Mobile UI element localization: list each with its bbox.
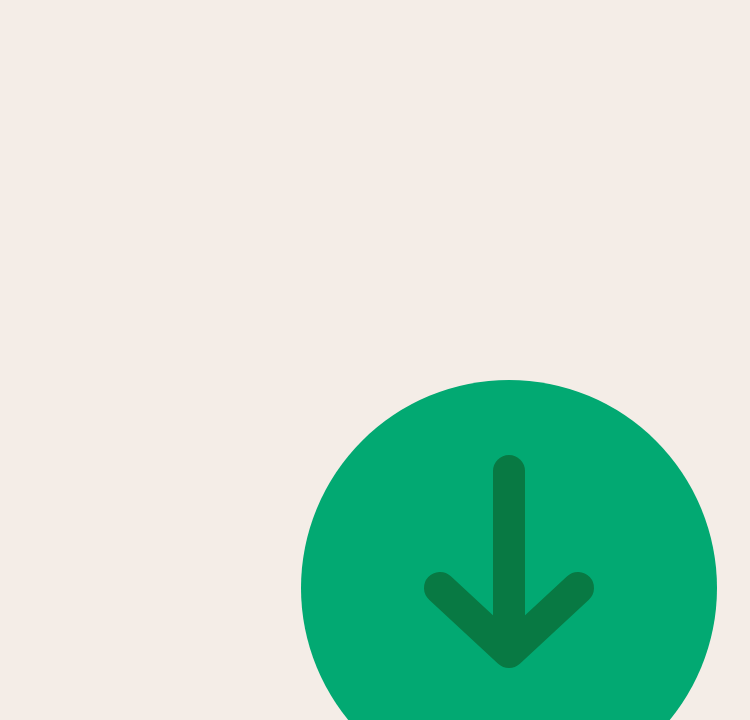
- button[interactable]: Download: [0, 0, 750, 720]
